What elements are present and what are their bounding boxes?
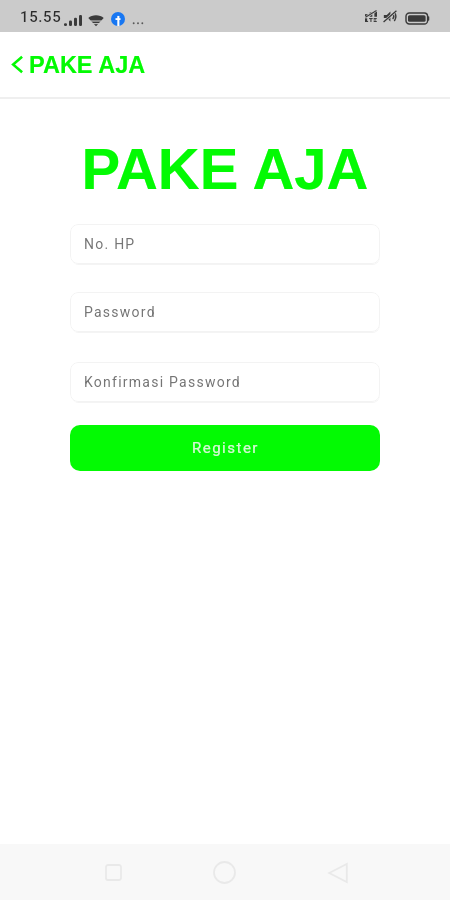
button[interactable]: Password	[70, 292, 380, 332]
staticText: Password	[84, 304, 156, 320]
button[interactable]: No. HP	[70, 224, 380, 264]
button[interactable]: Recent apps	[91, 850, 136, 895]
button[interactable]: Navigate up	[0, 32, 158, 97]
staticText: PAKE AJA	[0, 136, 450, 201]
button[interactable]: Home	[202, 850, 247, 895]
button[interactable]: Konfirmasi Password	[70, 362, 380, 402]
staticText: 15.55	[20, 8, 62, 26]
staticText: No. HP	[84, 236, 136, 252]
staticText: Konfirmasi Password	[84, 374, 241, 390]
staticText: Register	[192, 439, 259, 457]
button[interactable]: Register	[70, 425, 380, 471]
staticText: PAKE AJA	[29, 52, 146, 78]
